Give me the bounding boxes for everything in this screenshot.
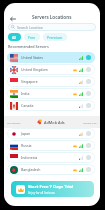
button[interactable]: Ads Banner bbox=[4, 116, 100, 128]
staticText: Servers Locations bbox=[32, 14, 72, 20]
staticText: Canada bbox=[21, 103, 34, 108]
staticText: Japan bbox=[21, 131, 31, 136]
button[interactable]: Singapore bbox=[7, 76, 95, 87]
staticText: All bbox=[12, 35, 17, 40]
button[interactable]: Search Location bbox=[8, 23, 96, 31]
staticText: Search Location bbox=[17, 25, 44, 30]
staticText: Russia bbox=[21, 143, 32, 148]
staticText: Singapore bbox=[21, 79, 38, 84]
button[interactable]: Canada bbox=[7, 100, 95, 111]
button[interactable]: All bbox=[8, 33, 21, 41]
staticText: India bbox=[21, 91, 30, 96]
staticText: AdMob Ads bbox=[44, 120, 65, 125]
button[interactable]: Premium bbox=[43, 33, 67, 41]
staticText: United States bbox=[21, 55, 43, 60]
staticText: Premium bbox=[47, 35, 63, 40]
button[interactable]: Back bbox=[8, 14, 17, 23]
button[interactable]: Bangladesh bbox=[7, 164, 95, 175]
button[interactable]: Indonesia bbox=[7, 152, 95, 163]
staticText: Enjoy for all features bbox=[28, 191, 55, 195]
button[interactable]: United Kingdom bbox=[7, 64, 95, 75]
staticText: Indonesia bbox=[21, 155, 38, 160]
staticText: Google Ads bbox=[83, 121, 97, 124]
button[interactable]: India bbox=[7, 88, 95, 99]
staticText: Ads Banner bbox=[7, 121, 21, 124]
staticText: Free bbox=[28, 35, 36, 40]
button[interactable]: Free bbox=[24, 33, 40, 41]
button[interactable]: Japan bbox=[7, 128, 95, 139]
staticText: Recommended Servers bbox=[8, 44, 49, 49]
staticText: United Kingdom bbox=[21, 67, 48, 72]
staticText: Bangladesh bbox=[21, 167, 41, 172]
button[interactable]: Start Free 7 Days Trial bbox=[11, 181, 94, 197]
button[interactable]: Russia bbox=[7, 140, 95, 151]
staticText: Start Free 7 Days Trial bbox=[28, 184, 74, 190]
button[interactable]: United States bbox=[7, 52, 95, 63]
